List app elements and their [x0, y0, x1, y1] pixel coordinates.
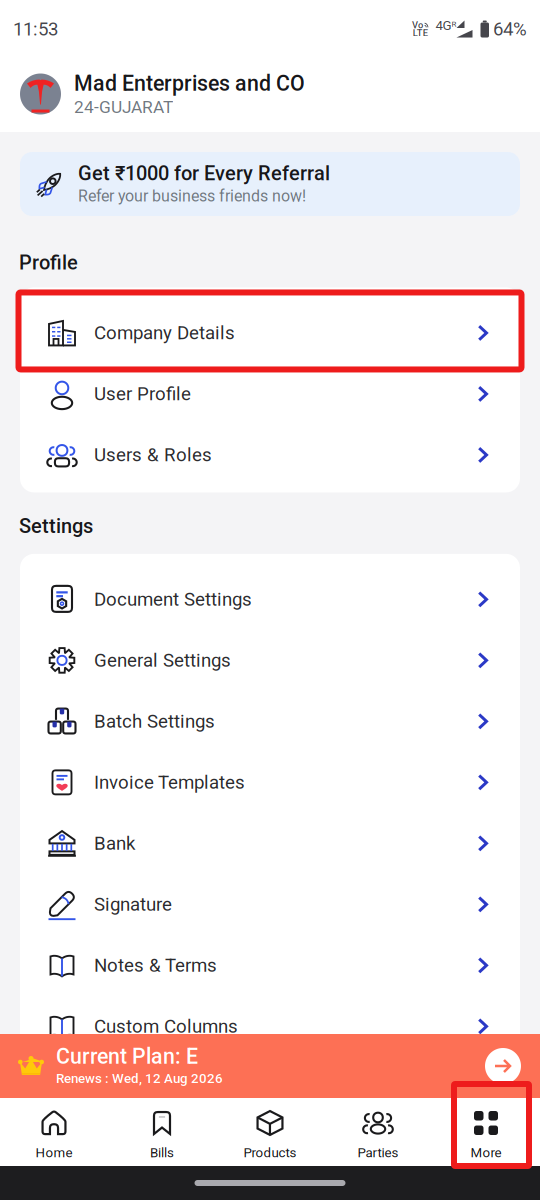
- button[interactable]: Batch Settings: [20, 691, 520, 752]
- button[interactable]: User Profile: [20, 363, 520, 424]
- staticText: Renews : Wed, 12 Aug 2026: [56, 1071, 223, 1086]
- button[interactable]: Invoice Templates: [20, 752, 520, 813]
- button[interactable]: Company Details: [20, 302, 520, 363]
- staticText: Mad Enterprises and CO: [74, 71, 305, 96]
- button[interactable]: General Settings: [20, 630, 520, 691]
- staticText: Refer your business friends now!: [78, 187, 306, 205]
- button[interactable]: Current Plan: E: [0, 1034, 540, 1098]
- staticText: Current Plan: E: [56, 1044, 198, 1069]
- staticText: Company Details: [94, 322, 235, 344]
- staticText: Products: [243, 1145, 296, 1161]
- staticText: R: [451, 19, 456, 29]
- button[interactable]: Get ₹1000 for Every Referral: [20, 152, 520, 216]
- staticText: More: [470, 1145, 501, 1161]
- button[interactable]: More: [432, 1098, 540, 1166]
- staticText: Bills: [150, 1145, 174, 1161]
- staticText: Signature: [94, 893, 172, 915]
- staticText: General Settings: [94, 649, 231, 671]
- staticText: 64%: [493, 18, 527, 40]
- staticText: Users & Roles: [94, 444, 212, 466]
- staticText: Invoice Templates: [94, 771, 245, 793]
- staticText: Parties: [357, 1145, 398, 1161]
- button[interactable]: Custom Columns: [20, 996, 520, 1057]
- button[interactable]: Home: [0, 1098, 108, 1166]
- button[interactable]: Bank: [20, 813, 520, 874]
- staticText: 4G: [435, 18, 451, 33]
- staticText: Settings: [19, 514, 93, 538]
- staticText: Bank: [94, 832, 135, 854]
- staticText: Document Settings: [94, 588, 252, 610]
- button[interactable]: Users & Roles: [20, 424, 520, 485]
- button[interactable]: Signature: [20, 874, 520, 935]
- staticText: LTE: [413, 27, 428, 38]
- button[interactable]: Document Settings: [20, 569, 520, 630]
- staticText: 24-GUJARAT: [74, 97, 173, 117]
- staticText: Home: [35, 1145, 72, 1161]
- button[interactable]: Mad Enterprises and CO: [0, 58, 540, 130]
- staticText: User Profile: [94, 383, 191, 405]
- staticText: Profile: [19, 251, 78, 274]
- staticText: Custom Columns: [94, 1015, 238, 1037]
- staticText: Get ₹1000 for Every Referral: [78, 162, 330, 185]
- button[interactable]: Notes & Terms: [20, 935, 520, 996]
- button[interactable]: Products: [216, 1098, 324, 1166]
- staticText: 11:53: [13, 18, 58, 40]
- button[interactable]: Parties: [324, 1098, 432, 1166]
- staticText: Batch Settings: [94, 710, 215, 732]
- button[interactable]: Bills: [108, 1098, 216, 1166]
- staticText: Notes & Terms: [94, 954, 217, 976]
- staticText: Vo: [412, 19, 423, 30]
